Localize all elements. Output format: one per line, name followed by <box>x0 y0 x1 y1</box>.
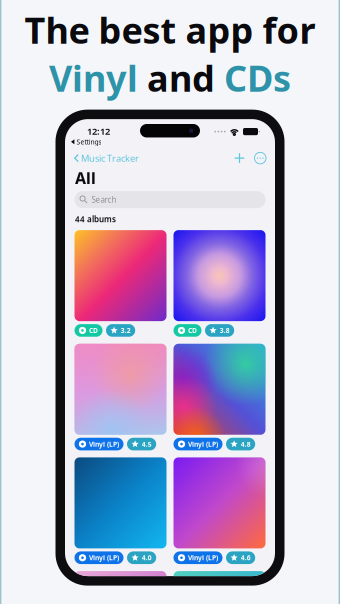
staticText: Settings <box>76 137 101 146</box>
staticText: Search <box>91 194 116 205</box>
button[interactable]: Album artwork <box>173 230 265 321</box>
button[interactable]: 3.8 <box>205 324 234 337</box>
staticText: and <box>138 54 224 102</box>
button[interactable]: CD <box>74 324 102 337</box>
button[interactable]: More options <box>249 148 275 168</box>
staticText: 4.6 <box>241 553 251 562</box>
button[interactable]: 4.0 <box>127 551 156 564</box>
button[interactable]: Vinyl (LP) <box>74 551 123 564</box>
button[interactable]: Vinyl (LP) <box>173 551 222 564</box>
button[interactable]: Vinyl (LP) <box>74 438 123 450</box>
staticText: All <box>75 167 96 189</box>
staticText: Vinyl <box>49 54 138 102</box>
staticText: CD <box>89 326 98 335</box>
staticText: 44 albums <box>75 214 116 224</box>
staticText: Vinyl (LP) <box>89 553 119 562</box>
button[interactable]: Vinyl (LP) <box>173 438 222 450</box>
staticText: Vinyl (LP) <box>89 440 119 449</box>
staticText: 3.2 <box>121 326 131 335</box>
staticText: 4.8 <box>241 440 251 449</box>
staticText: 3.8 <box>220 326 230 335</box>
staticText: CDs <box>224 54 291 102</box>
button[interactable]: Add album <box>229 149 249 167</box>
staticText: Vinyl (LP) <box>188 553 218 562</box>
button[interactable]: 4.5 <box>127 438 156 450</box>
staticText: 4.0 <box>142 553 152 562</box>
button[interactable]: Album artwork <box>74 457 166 548</box>
staticText: The best app for <box>24 6 315 54</box>
button[interactable]: CD <box>173 324 201 337</box>
button[interactable]: Album artwork <box>74 344 166 435</box>
button[interactable]: Album artwork <box>173 344 265 435</box>
button[interactable]: Music Tracker <box>65 148 143 168</box>
button[interactable]: 3.2 <box>106 324 135 337</box>
button[interactable]: 4.8 <box>226 438 255 450</box>
staticText: Vinyl (LP) <box>188 440 218 449</box>
button[interactable]: 4.6 <box>226 551 255 564</box>
button[interactable]: Album artwork <box>173 457 265 548</box>
staticText: Music Tracker <box>81 152 139 164</box>
button[interactable]: Album artwork <box>74 230 166 321</box>
staticText: 12:12 <box>87 125 110 137</box>
staticText: CD <box>188 326 197 335</box>
staticText: 4.5 <box>142 440 152 449</box>
